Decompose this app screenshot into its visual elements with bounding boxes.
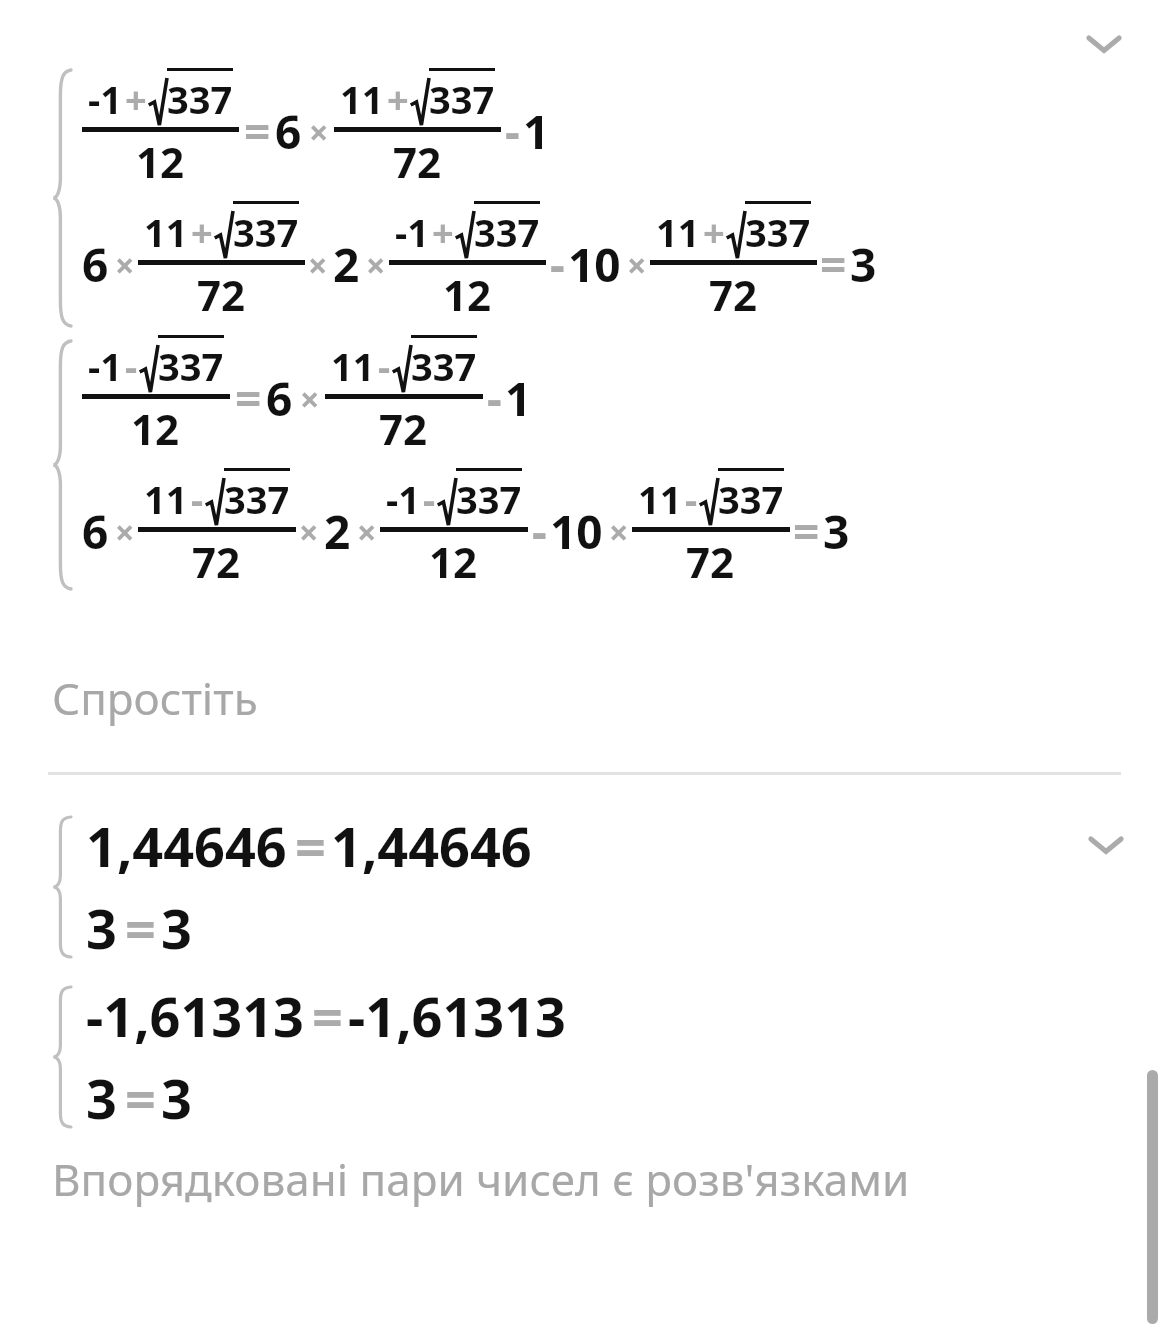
- staticText: -1: [88, 340, 122, 392]
- staticText: =: [125, 891, 156, 965]
- staticText: =: [820, 233, 847, 296]
- staticText: 72: [686, 533, 735, 590]
- staticText: ×: [300, 376, 320, 422]
- staticText: ×: [366, 242, 386, 288]
- staticText: +: [125, 73, 147, 125]
- staticText: 10: [568, 233, 621, 296]
- staticText: 1: [523, 100, 550, 163]
- staticText: +: [191, 206, 213, 258]
- staticText: 11: [638, 473, 682, 525]
- staticText: -: [532, 500, 547, 563]
- staticText: 1: [505, 367, 532, 430]
- staticText: 72: [709, 266, 758, 323]
- staticText: 337: [233, 206, 299, 258]
- staticText: 2: [333, 233, 360, 296]
- staticText: +: [432, 206, 454, 258]
- staticText: ×: [115, 242, 135, 288]
- staticText: -: [685, 473, 698, 525]
- staticText: 11: [144, 206, 188, 258]
- staticText: -1: [88, 73, 122, 125]
- staticText: =: [125, 1061, 156, 1135]
- staticText: 337: [158, 340, 224, 392]
- staticText: 3: [86, 1061, 117, 1135]
- staticText: ×: [299, 509, 319, 555]
- staticText: ×: [357, 509, 377, 555]
- staticText: +: [703, 206, 725, 258]
- staticText: -: [125, 340, 138, 392]
- staticText: 1,44646: [331, 809, 532, 883]
- staticText: -: [423, 473, 436, 525]
- staticText: 11: [656, 206, 700, 258]
- button[interactable]: Collapse steps: [1075, 14, 1133, 72]
- staticText: -: [378, 340, 391, 392]
- staticText: 6: [275, 100, 302, 163]
- staticText: ×: [609, 509, 629, 555]
- staticText: =: [793, 500, 820, 563]
- staticText: 3: [823, 500, 850, 563]
- staticText: 337: [411, 340, 477, 392]
- staticText: 3: [86, 891, 117, 965]
- staticText: ×: [115, 509, 135, 555]
- staticText: +: [387, 73, 409, 125]
- staticText: =: [244, 100, 271, 163]
- staticText: 337: [718, 473, 784, 525]
- button[interactable]: Expand result: [1077, 815, 1135, 873]
- staticText: -1,61313: [86, 979, 304, 1053]
- staticText: Спростіть: [52, 668, 258, 728]
- staticText: ×: [627, 242, 647, 288]
- staticText: 337: [474, 206, 540, 258]
- staticText: 11: [340, 73, 384, 125]
- staticText: 337: [167, 73, 233, 125]
- staticText: -1: [386, 473, 420, 525]
- staticText: =: [295, 809, 326, 883]
- staticText: 72: [393, 133, 442, 190]
- staticText: 72: [192, 533, 241, 590]
- staticText: -: [191, 473, 204, 525]
- staticText: 6: [82, 233, 109, 296]
- staticText: 6: [82, 500, 109, 563]
- staticText: Впорядковані пари чисел є розв'язками: [52, 1149, 910, 1209]
- staticText: -: [505, 100, 520, 163]
- staticText: 12: [443, 266, 492, 323]
- staticText: 72: [379, 400, 428, 457]
- staticText: 10: [550, 500, 603, 563]
- staticText: 3: [161, 891, 192, 965]
- staticText: 2: [324, 500, 351, 563]
- staticText: 1,44646: [86, 809, 287, 883]
- staticText: 12: [429, 533, 478, 590]
- staticText: 72: [197, 266, 246, 323]
- staticText: 337: [456, 473, 522, 525]
- staticText: -1,61313: [348, 979, 566, 1053]
- staticText: 3: [161, 1061, 192, 1135]
- staticText: =: [312, 979, 343, 1053]
- staticText: ×: [309, 109, 329, 155]
- staticText: 337: [429, 73, 495, 125]
- staticText: 11: [331, 340, 375, 392]
- staticText: =: [235, 367, 262, 430]
- staticText: -: [550, 233, 565, 296]
- staticText: 3: [850, 233, 877, 296]
- staticText: 6: [266, 367, 293, 430]
- staticText: 11: [144, 473, 188, 525]
- staticText: ×: [308, 242, 328, 288]
- staticText: -1: [395, 206, 429, 258]
- staticText: 12: [131, 400, 180, 457]
- staticText: 337: [745, 206, 811, 258]
- staticText: 12: [136, 133, 185, 190]
- staticText: 337: [224, 473, 290, 525]
- staticText: -: [487, 367, 502, 430]
